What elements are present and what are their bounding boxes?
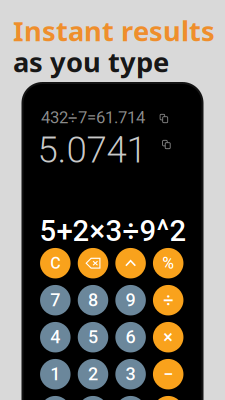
- staticText: as you type: [13, 43, 169, 80]
- button[interactable]: 0: [40, 396, 70, 400]
- staticText: 9: [126, 290, 136, 311]
- staticText: 1: [50, 364, 60, 385]
- staticText: 8: [88, 290, 98, 311]
- button[interactable]: ÷: [153, 285, 183, 315]
- button[interactable]: 4: [40, 322, 70, 352]
- staticText: ×: [163, 327, 173, 348]
- button[interactable]: .: [78, 396, 108, 400]
- staticText: 6: [126, 327, 136, 348]
- button[interactable]: 9: [115, 285, 146, 315]
- button[interactable]: Delete: [78, 248, 108, 278]
- staticText: %: [162, 254, 174, 273]
- button[interactable]: %: [153, 248, 183, 278]
- button[interactable]: 6: [115, 322, 146, 352]
- staticText: 5.0741: [37, 128, 146, 171]
- button[interactable]: −: [153, 359, 183, 389]
- staticText: Instant results: [13, 12, 215, 49]
- button[interactable]: ×: [153, 322, 183, 352]
- button[interactable]: +: [153, 396, 183, 400]
- staticText: C: [50, 254, 60, 273]
- button[interactable]: 7: [40, 285, 70, 315]
- button[interactable]: 1: [40, 359, 70, 389]
- button[interactable]: 8: [78, 285, 108, 315]
- staticText: −: [163, 364, 173, 385]
- staticText: 2: [88, 364, 98, 385]
- staticText: 432÷7=61.714: [41, 108, 145, 127]
- button[interactable]: Power: [115, 248, 146, 278]
- staticText: 5: [88, 327, 98, 348]
- button[interactable]: Copy 61.714: [159, 113, 168, 123]
- staticText: 7: [50, 290, 60, 311]
- button[interactable]: 5: [78, 322, 108, 352]
- button[interactable]: C: [40, 248, 70, 278]
- staticText: 5+2×3÷9^2: [39, 214, 186, 248]
- staticText: 4: [50, 327, 60, 348]
- staticText: 3: [126, 364, 136, 385]
- button[interactable]: 3: [115, 359, 146, 389]
- button[interactable]: Copy result: [162, 139, 171, 149]
- staticText: ÷: [163, 290, 173, 311]
- button[interactable]: 2: [78, 359, 108, 389]
- button[interactable]: =: [115, 396, 146, 400]
